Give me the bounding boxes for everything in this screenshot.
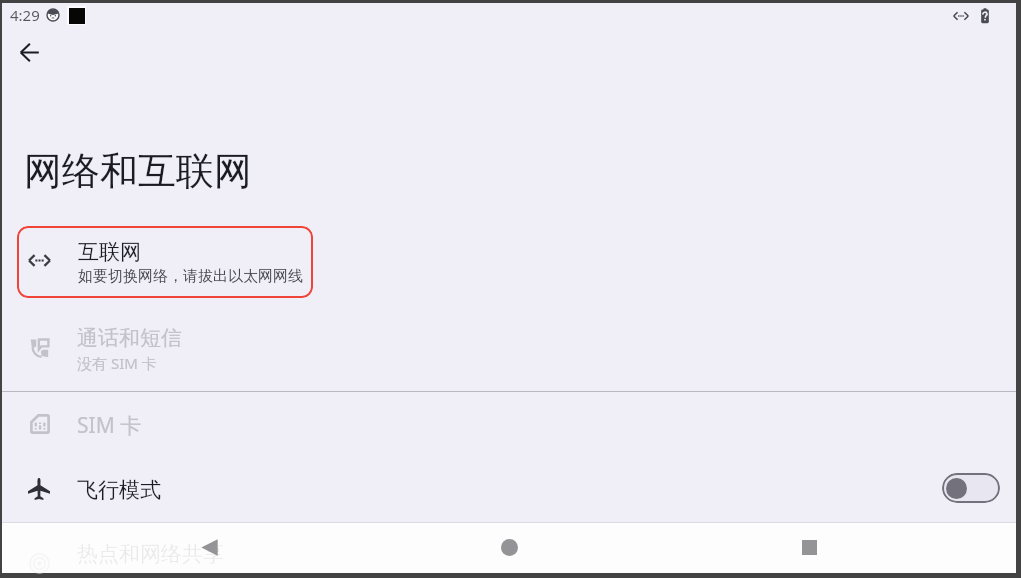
staticText: 热点和网络共享 [77, 541, 224, 567]
staticText: SIM 卡 [77, 411, 142, 440]
button[interactable]: Recent apps [787, 525, 831, 569]
button[interactable]: Back [187, 525, 231, 569]
button[interactable]: 互联网 [17, 226, 313, 298]
button[interactable]: Navigate up [8, 33, 50, 75]
button[interactable]: Home [487, 525, 531, 569]
button[interactable]: 通话和短信 [2, 318, 1016, 388]
button[interactable]: SIM 卡 [2, 395, 1016, 457]
staticText: 如要切换网络，请拔出以太网网线 [78, 267, 303, 286]
staticText: 没有 SIM 卡 [77, 353, 157, 373]
staticText: 飞行模式 [77, 477, 161, 503]
button[interactable]: 热点和网络共享 [2, 531, 1016, 576]
staticText: 互联网 [78, 239, 141, 265]
button[interactable]: Airplane mode [942, 473, 1000, 503]
staticText: 网络和互联网 [24, 147, 252, 195]
button[interactable]: 飞行模式 [2, 458, 1016, 522]
staticText: 4:29 [10, 5, 40, 25]
staticText: 通话和短信 [77, 325, 182, 351]
